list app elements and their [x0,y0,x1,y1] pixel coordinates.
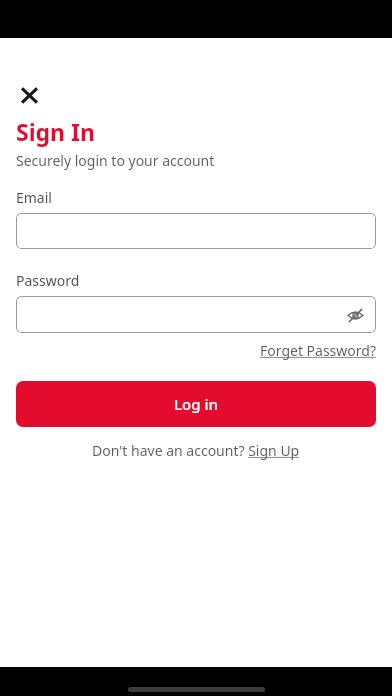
staticText: Sign In [16,116,95,147]
button[interactable]: Show password [341,301,369,329]
button[interactable]: Don't have an account? Sign Up [92,441,300,460]
staticText: Securely login to your account [16,151,215,170]
button[interactable]: Log in [16,381,376,427]
staticText: Forget Password? [260,341,376,360]
button[interactable]: Show password [16,296,376,333]
button[interactable] [16,213,376,249]
staticText: Password [16,271,80,290]
staticText: Log in [174,394,218,414]
button[interactable]: Close [16,82,42,108]
staticText: Email [16,188,52,207]
button[interactable]: Forget Password? [260,341,376,360]
staticText: Don't have an account? Sign Up [92,441,300,460]
